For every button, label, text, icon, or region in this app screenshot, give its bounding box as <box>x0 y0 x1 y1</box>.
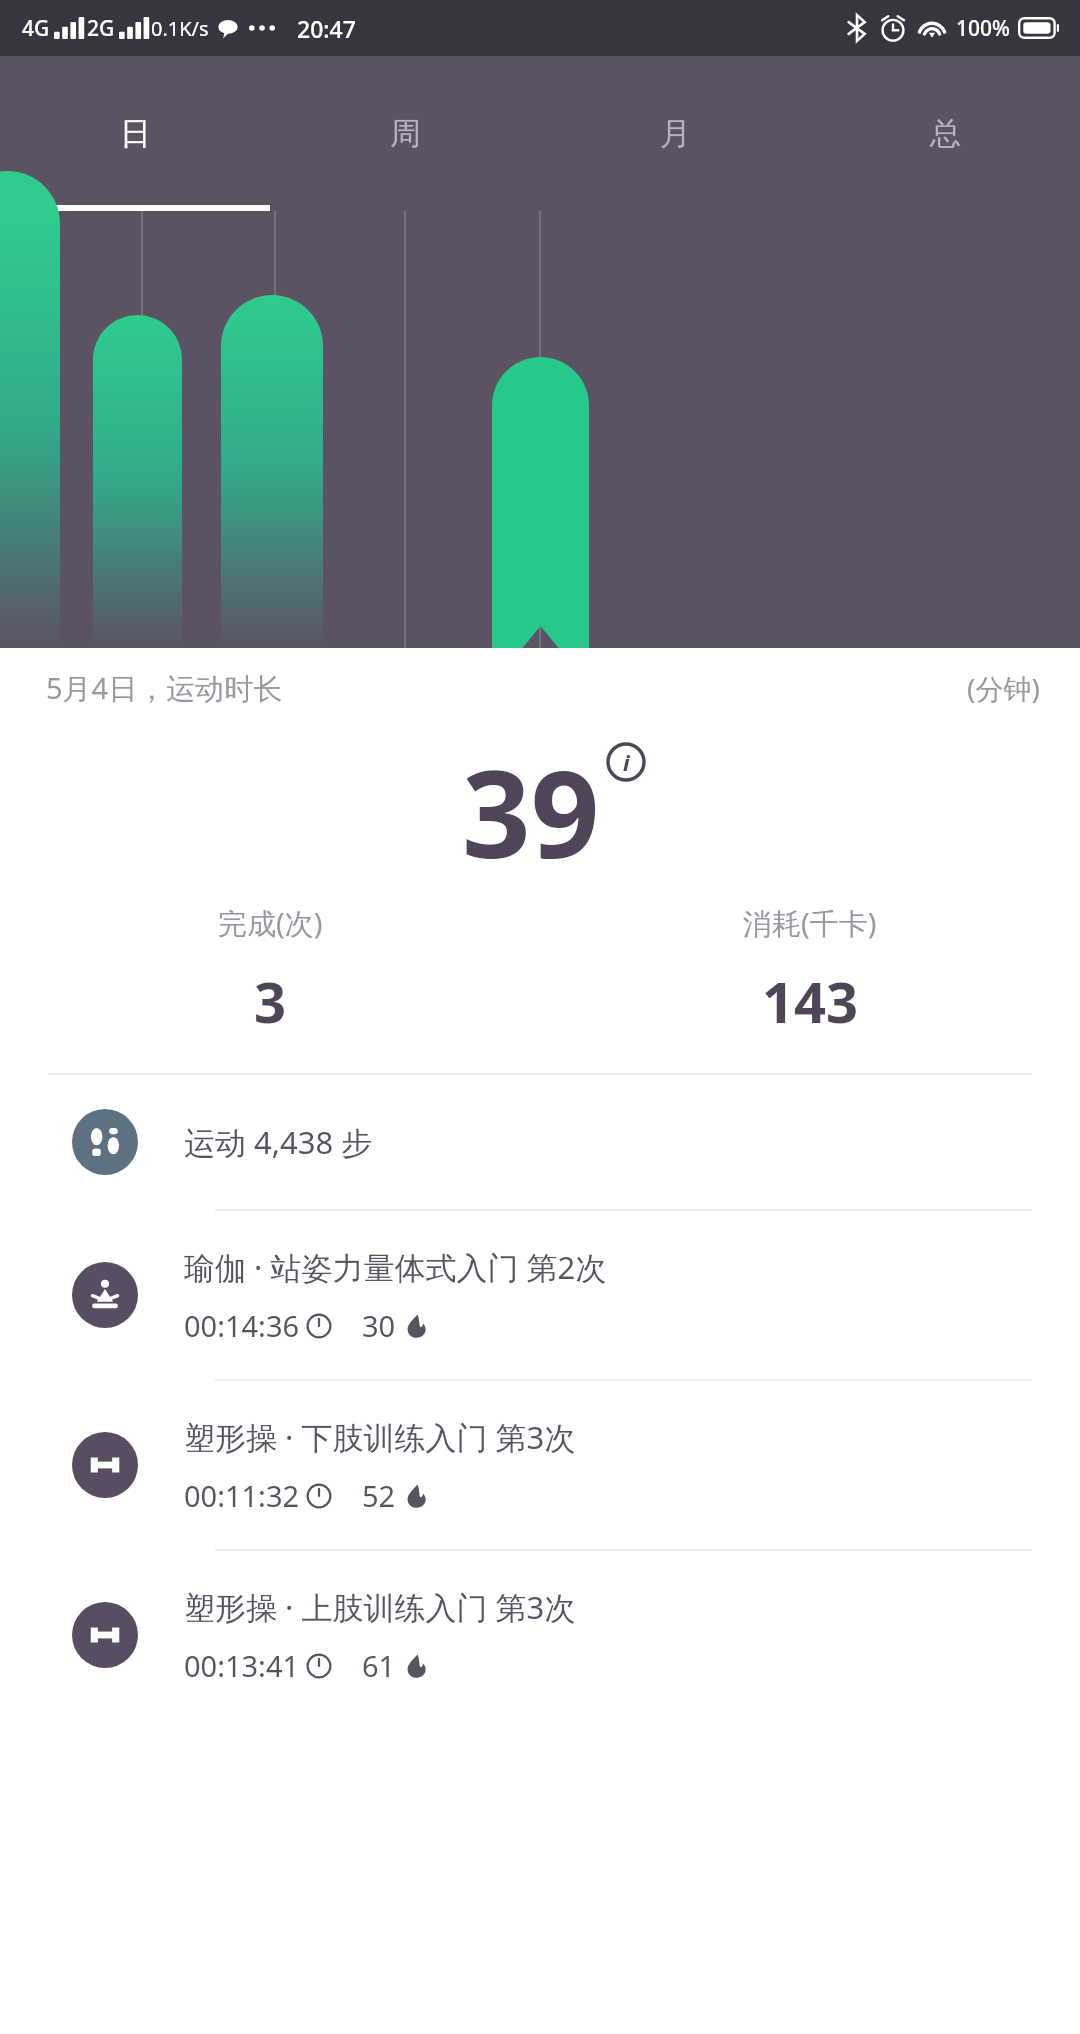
staticText: 143 <box>762 963 859 1039</box>
staticText: 总 <box>930 114 961 153</box>
staticText: 00:11:32 <box>184 1476 300 1515</box>
staticText: i <box>623 747 630 777</box>
staticText: 00:14:36 <box>184 1306 300 1345</box>
staticText: 30 <box>362 1306 396 1345</box>
button[interactable]: 周 <box>270 56 540 211</box>
staticText: 塑形操 · 上肢训练入门 第3次 <box>184 1586 576 1628</box>
staticText: 月 <box>660 114 691 153</box>
button[interactable]: Info <box>606 742 646 782</box>
staticText: 日 <box>120 114 151 153</box>
staticText: 20:47 <box>297 13 356 44</box>
staticText: 塑形操 · 下肢训练入门 第3次 <box>184 1416 576 1458</box>
button[interactable]: 塑形操 · 上肢训练入门 第3次 <box>0 1551 1080 1719</box>
button[interactable]: 瑜伽 · 站姿力量体式入门 第2次 <box>0 1211 1080 1379</box>
staticText: 61 <box>362 1646 396 1685</box>
button[interactable]: 总 <box>810 56 1080 211</box>
staticText: 0.1K/s <box>151 15 209 42</box>
staticText: (分钟) <box>967 669 1040 707</box>
staticText: 4G <box>22 14 50 43</box>
staticText: 5月4日，运动时长 <box>46 668 283 708</box>
staticText: 3 <box>254 963 287 1039</box>
staticText: 00:13:41 <box>184 1646 300 1685</box>
staticText: 完成(次) <box>218 903 323 943</box>
button[interactable]: 塑形操 · 下肢训练入门 第3次 <box>0 1381 1080 1549</box>
staticText: 100% <box>956 14 1010 43</box>
staticText: 消耗(千卡) <box>743 903 877 943</box>
staticText: 运动 4,438 步 <box>184 1121 373 1163</box>
button[interactable]: 完成(次) <box>0 903 540 1039</box>
button[interactable]: 月 <box>540 56 810 211</box>
staticText: 52 <box>362 1476 396 1515</box>
button[interactable]: 运动 4,438 步 <box>0 1075 1080 1209</box>
button[interactable]: 消耗(千卡) <box>540 903 1080 1039</box>
button[interactable]: 日 <box>0 56 270 211</box>
staticText: 瑜伽 · 站姿力量体式入门 第2次 <box>184 1246 607 1288</box>
staticText: 39 <box>462 730 600 893</box>
staticText: 周 <box>390 114 421 153</box>
staticText: 2G <box>87 14 115 43</box>
